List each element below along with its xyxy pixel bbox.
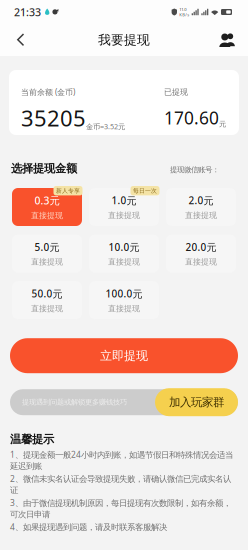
staticText: 100.0元 (105, 287, 142, 300)
staticText: 直接提现 (108, 257, 140, 267)
staticText: 提现微信账号： (170, 165, 219, 174)
staticText: 0.3元 (34, 193, 59, 208)
staticText: 直接提现 (31, 303, 63, 314)
staticText: 20.0元 (185, 240, 216, 254)
staticText: 170.60 (164, 106, 219, 130)
staticText: 5.0元 (34, 240, 59, 254)
button[interactable]: 10.0元 (89, 235, 159, 273)
staticText: 21:33 (14, 5, 41, 19)
staticText: 直接提现 (31, 210, 63, 221)
staticText: 每日一次 (133, 187, 157, 194)
staticText: 2.0元 (188, 194, 213, 207)
button[interactable]: 返回 (8, 27, 34, 53)
staticText: 直接提现 (31, 257, 63, 267)
staticText: 立即提现 (100, 348, 148, 363)
button[interactable]: 5.0元 (12, 235, 82, 273)
button[interactable]: 加入玩家群 (155, 388, 238, 416)
staticText: 加入玩家群 (169, 395, 224, 409)
staticText: 1、提现金额一般24小时内到账，如遇节假日和特殊情况会适当延迟到账 (10, 449, 233, 471)
button[interactable]: 1.0元 (89, 188, 159, 226)
staticText: 2、微信未实名认证会导致提现失败，请确认微信已完成实名认证 (10, 473, 231, 495)
staticText: 直接提现 (185, 210, 217, 220)
button[interactable]: 100.0元 (89, 281, 159, 319)
staticText: 已提现 (164, 87, 188, 97)
button[interactable]: 客服 (214, 27, 240, 53)
staticText: 4、如果提现遇到问题，请及时联系客服解决 (10, 521, 167, 533)
staticText: 提现遇到问题或解锁更多赚钱技巧 (22, 398, 127, 407)
staticText: 当前余额 (金币) (21, 87, 75, 97)
staticText: 金币=3.52元 (86, 122, 125, 131)
staticText: 元 (219, 119, 226, 129)
button[interactable]: 0.3元 (12, 188, 82, 226)
staticText: 选择提现金额 (11, 161, 77, 175)
button[interactable]: 20.0元 (166, 235, 236, 273)
staticText: 10.0元 (108, 240, 139, 254)
staticText: 直接提现 (108, 210, 140, 220)
staticText: 新人专享 (56, 187, 80, 194)
button[interactable]: 立即提现 (10, 338, 238, 373)
staticText: 我要提现 (98, 32, 150, 48)
staticText: 11.0 (179, 7, 186, 12)
button[interactable]: 2.0元 (166, 188, 236, 226)
staticText: KB/s (179, 12, 189, 17)
staticText: 50.0元 (31, 287, 62, 300)
staticText: 3、由于微信提现机制原因，每日提现有次数限制，如有余额，可次日申请 (10, 497, 231, 520)
staticText: 温馨提示 (10, 432, 54, 446)
staticText: 35205 (21, 103, 86, 133)
staticText: 直接提现 (108, 303, 140, 314)
button[interactable]: 50.0元 (12, 281, 82, 319)
staticText: 直接提现 (185, 257, 217, 267)
staticText: 1.0元 (111, 194, 136, 207)
